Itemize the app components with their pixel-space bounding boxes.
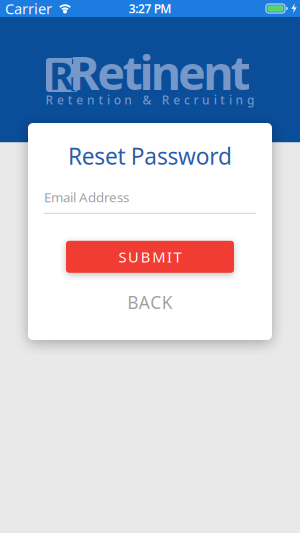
staticText: e bbox=[57, 92, 64, 108]
staticText: i bbox=[214, 92, 217, 108]
button[interactable]: SUBMIT bbox=[66, 241, 234, 273]
staticText: e bbox=[76, 92, 83, 108]
staticText: Email Address bbox=[44, 188, 129, 206]
button[interactable]: BACK bbox=[107, 283, 193, 322]
staticText: r bbox=[193, 92, 198, 108]
staticText: & bbox=[142, 92, 151, 108]
staticText: Reset Password bbox=[68, 141, 232, 171]
staticText: t bbox=[68, 92, 73, 108]
staticText: o bbox=[114, 92, 121, 108]
staticText: n bbox=[87, 92, 95, 108]
staticText: Carrier bbox=[5, 0, 52, 18]
staticText: r bbox=[69, 64, 80, 98]
staticText: R bbox=[45, 92, 53, 108]
staticText: R bbox=[162, 92, 170, 108]
staticText: n bbox=[124, 92, 132, 108]
staticText: t bbox=[220, 92, 225, 108]
staticText: BACK bbox=[127, 291, 173, 314]
staticText: c bbox=[184, 92, 190, 108]
staticText: n bbox=[235, 92, 243, 108]
staticText: SUBMIT bbox=[118, 247, 181, 267]
staticText: g bbox=[247, 92, 254, 108]
staticText: R bbox=[49, 50, 73, 100]
staticText: Retinent bbox=[69, 41, 250, 103]
staticText: i bbox=[107, 92, 110, 108]
staticText: u bbox=[202, 92, 210, 108]
button[interactable]: Email Address bbox=[44, 188, 256, 214]
staticText: 3:27 PM bbox=[129, 0, 171, 16]
staticText: t bbox=[98, 92, 103, 108]
staticText: i bbox=[229, 92, 232, 108]
staticText: e bbox=[173, 92, 180, 108]
